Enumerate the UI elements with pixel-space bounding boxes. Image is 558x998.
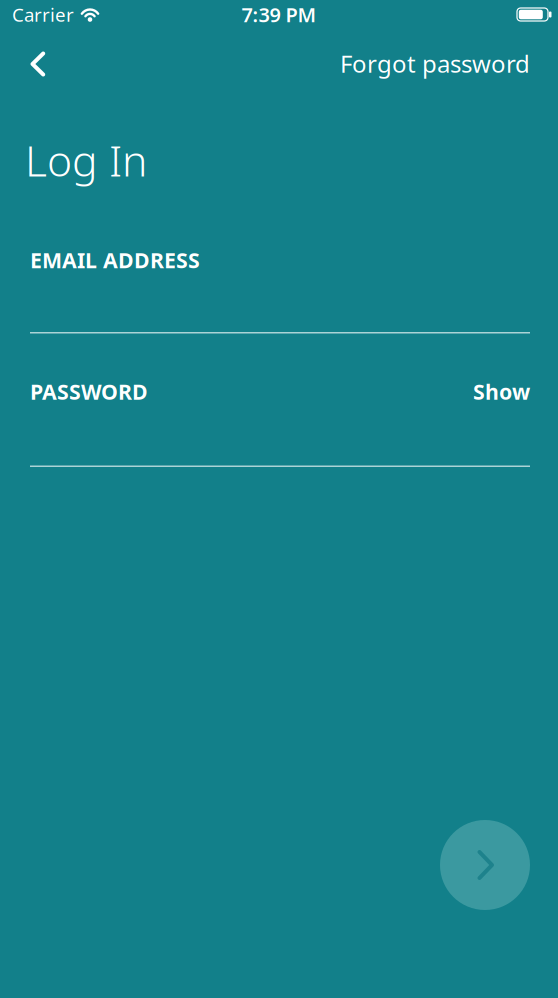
button[interactable]: Next [440, 820, 530, 910]
staticText: Show [473, 377, 530, 406]
button[interactable]: Show [473, 377, 530, 406]
staticText: PASSWORD [30, 377, 148, 406]
staticText: Log In [25, 132, 147, 188]
staticText: Forgot password [340, 48, 530, 79]
staticText: Carrier [12, 2, 74, 27]
button[interactable]: Back [30, 41, 74, 85]
button[interactable]: Forgot password [340, 48, 530, 79]
staticText: 7:39 PM [241, 1, 316, 28]
staticText: EMAIL ADDRESS [30, 246, 200, 274]
